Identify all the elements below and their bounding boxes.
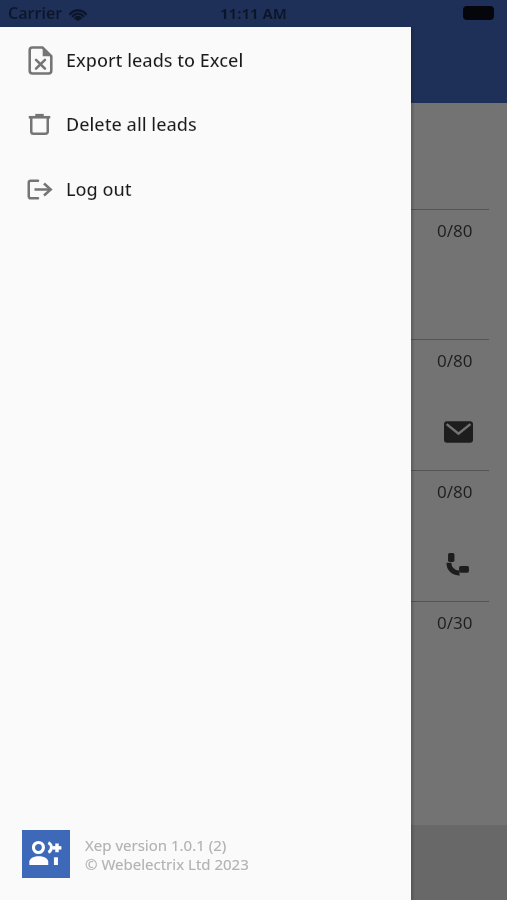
- staticText: Carrier: [8, 2, 63, 24]
- button[interactable]: Export leads to Excel: [0, 27, 411, 93]
- staticText: Log out: [66, 177, 132, 202]
- staticText: Export leads to Excel: [66, 48, 244, 73]
- staticText: 0/30: [437, 611, 473, 634]
- button[interactable]: [0, 103, 507, 900]
- button[interactable]: Delete all leads: [0, 93, 411, 156]
- staticText: 0/80: [437, 349, 473, 372]
- staticText: Delete all leads: [66, 112, 197, 137]
- staticText: 0/80: [437, 480, 473, 503]
- staticText: Xep version 1.0.1 (2) © Webelectrix Ltd …: [85, 835, 249, 874]
- button[interactable]: Xep app icon: [22, 830, 70, 878]
- button[interactable]: Log out: [0, 156, 411, 222]
- staticText: 0/80: [437, 219, 473, 242]
- staticText: 11:11 AM: [220, 3, 287, 23]
